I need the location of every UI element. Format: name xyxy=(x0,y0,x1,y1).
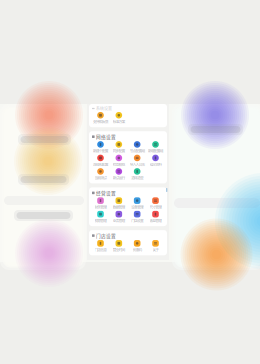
staticText: 财务管理 xyxy=(94,204,106,209)
staticText: 营业时间 xyxy=(113,247,125,252)
button[interactable]: 清除清单 xyxy=(129,168,146,180)
button[interactable]: 新增配置组 xyxy=(147,141,164,153)
staticText: 连接和配置 xyxy=(93,162,108,167)
button[interactable]: 财务管理 xyxy=(92,197,109,210)
button[interactable]: 连接和配置 xyxy=(92,154,109,167)
button[interactable]: 关于 xyxy=(147,240,164,252)
staticText: 新试运行 xyxy=(113,175,125,180)
staticText: 支持和反馈 xyxy=(93,119,108,124)
button[interactable]: 指定资料 xyxy=(147,154,164,167)
staticText: 设备管理 xyxy=(131,204,143,209)
button[interactable]: 营业时间 xyxy=(110,240,127,252)
staticText: 收益管理 xyxy=(149,218,161,223)
button[interactable]: 节点配置组 xyxy=(129,141,146,153)
staticText: 经营设置 xyxy=(96,189,116,196)
staticText: 权限管理 xyxy=(94,218,106,223)
button[interactable]: 当前测试 xyxy=(92,168,109,180)
button[interactable]: 导入人员库 xyxy=(129,154,146,167)
staticText: 系统设置 xyxy=(96,106,112,111)
button[interactable]: 支持和反馈 xyxy=(92,112,109,124)
staticText: 门店设置 xyxy=(131,218,143,223)
staticText: 新增配置组 xyxy=(148,148,163,153)
staticText: 尺寸管理 xyxy=(149,204,161,209)
button[interactable]: 同步配置 xyxy=(110,141,127,153)
button[interactable]: 检查模拟 xyxy=(110,154,127,167)
staticText: 优惠码 xyxy=(133,247,142,252)
button[interactable]: 尺寸管理 xyxy=(147,197,164,210)
staticText: 门店信息 xyxy=(94,247,106,252)
staticText: 业务管理 xyxy=(113,218,125,223)
staticText: 指定资料 xyxy=(149,162,161,167)
button[interactable]: 业务管理 xyxy=(110,211,127,223)
staticText: 新建个配置 xyxy=(93,148,108,153)
staticText: 门店设置 xyxy=(96,232,116,239)
button[interactable]: 门店信息 xyxy=(92,240,109,252)
button[interactable]: 收益管理 xyxy=(147,211,164,223)
button[interactable]: 标准方案 xyxy=(110,112,127,124)
button[interactable]: 设备管理 xyxy=(129,197,146,210)
staticText: 导入人员库 xyxy=(130,162,145,167)
button[interactable]: 权限管理 xyxy=(92,211,109,223)
staticText: 清除清单 xyxy=(131,175,143,180)
button[interactable]: 数据管理 xyxy=(110,197,127,210)
staticText: 节点配置组 xyxy=(130,148,145,153)
staticText: 关于 xyxy=(152,247,158,252)
staticText: 检查模拟 xyxy=(113,162,125,167)
staticText: 网络设置 xyxy=(96,133,116,140)
button[interactable]: 新试运行 xyxy=(110,168,127,180)
staticText: 当前测试 xyxy=(94,175,106,180)
staticText: 标准方案 xyxy=(113,119,125,124)
staticText: 数据管理 xyxy=(113,204,125,209)
button[interactable]: 新建个配置 xyxy=(92,141,109,153)
staticText: 同步配置 xyxy=(113,148,125,153)
button[interactable]: 门店设置 xyxy=(129,211,146,223)
button[interactable]: 优惠码 xyxy=(129,240,146,252)
